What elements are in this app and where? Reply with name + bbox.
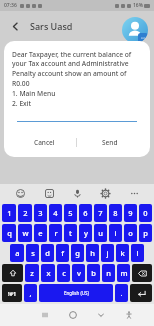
staticText: j	[106, 248, 109, 258]
staticText: v	[77, 268, 81, 278]
staticText: c	[62, 268, 66, 278]
button[interactable]: 8	[109, 204, 122, 222]
staticText: m	[120, 268, 128, 278]
staticText: 4	[53, 208, 58, 218]
button[interactable]: !#1	[2, 284, 22, 302]
button[interactable]: m	[117, 264, 130, 282]
staticText: 1	[7, 208, 12, 218]
staticText: t	[69, 228, 72, 238]
button[interactable]: s	[26, 244, 39, 262]
staticText: 07:36	[4, 2, 17, 9]
button[interactable]: 3	[34, 204, 47, 222]
button[interactable]: Back	[6, 17, 24, 35]
staticText: 16%	[133, 2, 143, 9]
button[interactable]: Hide keyboard	[87, 304, 115, 326]
button[interactable]: p	[139, 224, 152, 242]
staticText: ,	[29, 288, 32, 298]
button[interactable]: 5	[64, 204, 77, 222]
staticText: .	[120, 288, 123, 298]
staticText: r	[54, 228, 58, 238]
staticText: 9	[128, 208, 133, 218]
button[interactable]: h	[86, 244, 99, 262]
button[interactable]: Send	[77, 132, 142, 152]
staticText: Dear Taxpayer, the current balance of yo…	[12, 50, 142, 108]
button[interactable]: o	[124, 224, 137, 242]
staticText: u	[98, 228, 103, 238]
button[interactable]: Home	[59, 304, 87, 326]
button[interactable]: Emoji	[12, 185, 28, 201]
staticText: n	[106, 268, 111, 278]
staticText: !#1	[8, 290, 17, 297]
staticText: s	[31, 248, 35, 258]
staticText: h	[90, 248, 95, 258]
staticText: y	[84, 228, 88, 238]
staticText: k	[120, 248, 125, 258]
button[interactable]: Shift	[2, 264, 23, 282]
staticText: 5	[68, 208, 73, 218]
button[interactable]: e	[34, 224, 47, 242]
staticText: d	[45, 248, 50, 258]
button[interactable]: j	[101, 244, 114, 262]
staticText: i	[114, 228, 117, 238]
button[interactable]: 4	[49, 204, 62, 222]
staticText: z	[30, 268, 34, 278]
button[interactable]: n	[102, 264, 115, 282]
button[interactable]: Settings	[97, 185, 113, 201]
button[interactable]: 1	[2, 204, 16, 222]
button[interactable]: ,	[24, 284, 37, 302]
button[interactable]: v	[72, 264, 85, 282]
staticText: q	[7, 228, 12, 238]
button[interactable]: Voice input	[69, 185, 85, 201]
button[interactable]: c	[57, 264, 70, 282]
button[interactable]: k	[116, 244, 129, 262]
staticText: 2	[23, 208, 28, 218]
button[interactable]: More options	[126, 185, 142, 201]
button[interactable]: a	[10, 244, 24, 262]
staticText: w	[22, 228, 29, 238]
staticText: 8	[113, 208, 118, 218]
staticText: a	[15, 248, 20, 258]
staticText: Send	[102, 138, 118, 147]
button[interactable]: 2	[18, 204, 32, 222]
button[interactable]: l	[131, 244, 144, 262]
button[interactable]: u	[94, 224, 107, 242]
button[interactable]: Backspace	[132, 264, 152, 282]
button[interactable]: Recents	[31, 304, 59, 326]
button[interactable]: 7	[94, 204, 107, 222]
button[interactable]: Accessibility	[115, 304, 143, 326]
staticText: o	[128, 228, 133, 238]
staticText: 7	[98, 208, 103, 218]
button[interactable]: b	[87, 264, 100, 282]
button[interactable]: x	[41, 264, 55, 282]
staticText: g	[75, 248, 80, 258]
staticText: 0	[143, 208, 148, 218]
button[interactable]: r	[49, 224, 62, 242]
staticText: e	[38, 228, 43, 238]
button[interactable]: 9	[124, 204, 137, 222]
staticText: English (US)	[64, 290, 89, 296]
button[interactable]: d	[41, 244, 54, 262]
staticText: 6	[83, 208, 88, 218]
button[interactable]: 6	[79, 204, 92, 222]
staticText: f	[61, 248, 64, 258]
button[interactable]: q	[2, 224, 16, 242]
button[interactable]: Stickers	[41, 185, 57, 201]
button[interactable]: g	[71, 244, 84, 262]
staticText: b	[91, 268, 96, 278]
button[interactable]: Cancel	[12, 132, 76, 152]
staticText: Sars Uasd	[30, 20, 73, 32]
button[interactable]: z	[25, 264, 39, 282]
button[interactable]: Contact avatar	[122, 17, 148, 43]
button[interactable]: English (US)	[39, 284, 113, 302]
button[interactable]: .	[115, 284, 128, 302]
staticText: p	[143, 228, 148, 238]
button[interactable]: 0	[139, 204, 152, 222]
staticText: Cancel	[34, 138, 55, 147]
button[interactable]: i	[109, 224, 122, 242]
button[interactable]: Enter	[130, 284, 152, 302]
button[interactable]: t	[64, 224, 77, 242]
button[interactable]: w	[18, 224, 32, 242]
button[interactable]: y	[79, 224, 92, 242]
button[interactable]: f	[56, 244, 69, 262]
staticText: 3	[38, 208, 43, 218]
